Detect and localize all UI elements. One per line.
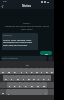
staticText: c — [19, 84, 21, 87]
button[interactable]: Send — [48, 56, 53, 61]
button[interactable]: Back — [0, 4, 5, 9]
staticText: Type a message — [2, 57, 18, 60]
button[interactable]: t — [24, 68, 29, 74]
button[interactable]: k — [41, 75, 46, 81]
button[interactable]: . — [43, 89, 48, 95]
staticText: . — [45, 91, 46, 94]
button[interactable]: Type a message — [1, 56, 47, 61]
staticText: ?1 — [2, 91, 5, 94]
button[interactable]: m — [41, 82, 47, 88]
staticText: q — [2, 70, 4, 73]
staticText: x — [14, 84, 16, 87]
button[interactable]: y — [29, 68, 34, 74]
button[interactable]: a — [3, 75, 9, 81]
staticText: m — [43, 84, 46, 87]
button[interactable]: r — [18, 68, 24, 74]
button[interactable]: w — [6, 68, 12, 74]
staticText: w — [8, 70, 10, 73]
staticText: f — [23, 77, 24, 80]
staticText: d — [17, 77, 19, 80]
staticText: p — [51, 70, 53, 73]
staticText: s — [11, 77, 13, 80]
staticText: Notes — [22, 4, 32, 8]
button[interactable]: g — [26, 75, 31, 81]
button[interactable]: u — [34, 68, 39, 74]
staticText: k — [43, 77, 45, 80]
button[interactable]: z — [7, 82, 12, 88]
button[interactable]: b — [29, 82, 35, 88]
button[interactable]: e — [12, 68, 18, 74]
staticText: t — [26, 70, 27, 73]
button[interactable]: ?1 — [0, 89, 6, 95]
button[interactable]: s — [9, 75, 15, 81]
button[interactable]: v — [23, 82, 29, 88]
button[interactable]: f — [21, 75, 26, 81]
staticText: r — [21, 70, 22, 73]
button[interactable]: l — [46, 75, 51, 81]
staticText: Messages are end-to-end encrypted. Tap t… — [3, 25, 51, 31]
staticText: This is your private chat. Messages you … — [3, 38, 37, 47]
staticText: y — [31, 70, 33, 73]
staticText: n — [37, 84, 39, 87]
button[interactable]: Hi — [40, 51, 52, 55]
staticText: a — [5, 77, 7, 80]
button[interactable]: d — [15, 75, 21, 81]
staticText: e — [14, 70, 16, 73]
staticText: Hi — [45, 52, 48, 55]
staticText: u — [36, 70, 38, 73]
button[interactable]: o — [44, 68, 49, 74]
button[interactable]: c — [17, 82, 23, 88]
staticText: Hi — [26, 63, 29, 66]
button[interactable]: , — [6, 89, 11, 95]
staticText: 9:41 — [3, 0, 8, 3]
staticText: g — [28, 77, 30, 80]
staticText: j — [38, 77, 39, 80]
button[interactable]: h — [31, 75, 36, 81]
staticText: o — [46, 70, 48, 73]
staticText: b — [31, 84, 33, 87]
staticText: l — [48, 77, 49, 80]
button[interactable]: n — [35, 82, 41, 88]
button[interactable]: x — [12, 82, 17, 88]
staticText: Reminder — [3, 34, 12, 37]
staticText: v — [25, 84, 27, 87]
button[interactable]: Reminder — [2, 33, 38, 50]
button[interactable]: j — [36, 75, 41, 81]
button[interactable]: q — [0, 68, 6, 74]
button[interactable]: p — [49, 68, 54, 74]
staticText: z — [9, 84, 11, 87]
staticText: i — [41, 70, 42, 73]
button[interactable]: i — [39, 68, 44, 74]
staticText: TODAY — [23, 21, 31, 24]
staticText: h — [33, 77, 35, 80]
